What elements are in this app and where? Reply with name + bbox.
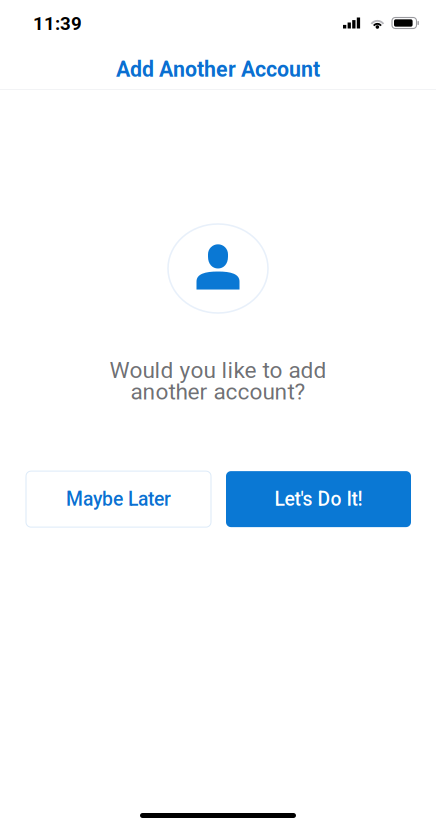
button[interactable]: Add Another Account: [0, 46, 436, 89]
button[interactable]: Maybe Later: [26, 471, 211, 527]
staticText: Add Another Account: [116, 57, 320, 82]
staticText: Maybe Later: [66, 488, 171, 510]
staticText: 11:39: [33, 13, 82, 34]
staticText: another account?: [130, 379, 305, 405]
button[interactable]: Let's Do It!: [226, 471, 411, 527]
staticText: Would you like to add: [109, 357, 326, 384]
staticText: Let's Do It!: [274, 488, 362, 510]
